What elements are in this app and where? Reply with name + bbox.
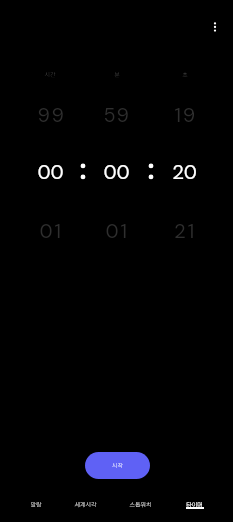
staticText: 초: [182, 70, 188, 79]
staticText: 00: [37, 159, 64, 185]
staticText: 00: [103, 159, 130, 185]
staticText: 20: [172, 159, 197, 185]
staticText: 59: [103, 102, 131, 128]
staticText: 세계시각: [74, 500, 97, 509]
staticText: 01: [39, 218, 63, 244]
staticText: 알람: [30, 500, 42, 509]
staticText: 시간: [44, 70, 56, 79]
staticText: 시작: [112, 461, 124, 470]
staticText: 타이머: [186, 500, 203, 509]
button[interactable]: More options: [203, 15, 227, 39]
button[interactable]: 시작: [85, 452, 150, 479]
staticText: 스톱워치: [129, 500, 152, 509]
staticText: 분: [114, 70, 120, 79]
staticText: 01: [105, 218, 129, 244]
staticText: 19: [174, 102, 197, 128]
staticText: 99: [37, 102, 66, 128]
staticText: 21: [174, 218, 196, 244]
